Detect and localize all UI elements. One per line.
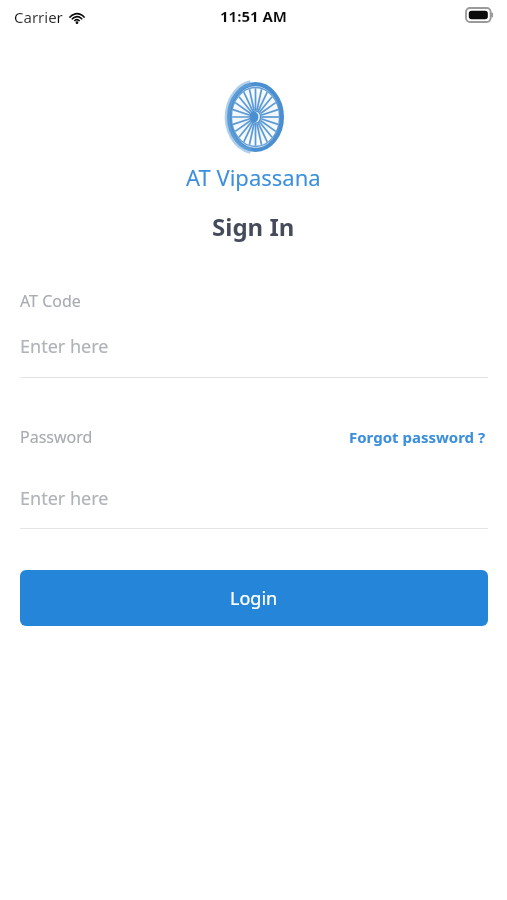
staticText: Login bbox=[230, 586, 278, 611]
staticText: Password bbox=[20, 426, 93, 448]
staticText: 11:51 AM bbox=[220, 6, 287, 26]
staticText: Enter here bbox=[20, 334, 109, 359]
button[interactable]: Login bbox=[20, 570, 488, 626]
staticText: Forgot password ? bbox=[349, 427, 486, 447]
staticText: AT Code bbox=[20, 290, 81, 312]
staticText: AT Vipassana bbox=[186, 162, 321, 192]
button[interactable]: Forgot password ? bbox=[347, 425, 488, 449]
staticText: Sign In bbox=[212, 210, 295, 243]
staticText: Carrier bbox=[14, 7, 63, 27]
staticText: Enter here bbox=[20, 486, 109, 511]
